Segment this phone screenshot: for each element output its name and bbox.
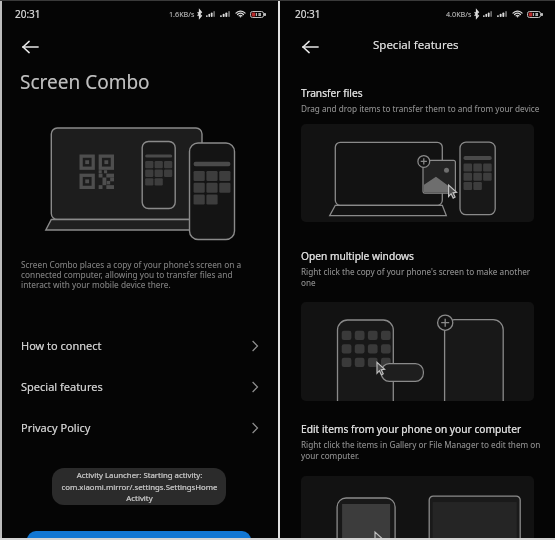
staticText: Special features bbox=[21, 379, 103, 394]
staticText: 4.0KB/s bbox=[446, 9, 472, 19]
staticText: Drag and drop items to transfer them to … bbox=[301, 103, 540, 114]
staticText: Right click the items in Gallery or File… bbox=[301, 439, 544, 462]
staticText: Right click the copy of your phone's scr… bbox=[301, 266, 544, 289]
button[interactable] bbox=[27, 531, 251, 540]
button[interactable]: Privacy Policy bbox=[0, 407, 278, 448]
staticText: Open multiple windows bbox=[301, 249, 414, 263]
button[interactable]: Special features bbox=[0, 366, 278, 407]
staticText: How to connect bbox=[21, 338, 102, 353]
staticText: Activity Launcher: Starting activity: co… bbox=[61, 470, 218, 503]
staticText: Edit items from your phone on your compu… bbox=[301, 422, 522, 436]
staticText: 20:31 bbox=[295, 7, 321, 21]
staticText: Transfer files bbox=[301, 86, 363, 100]
button[interactable]: How to connect bbox=[0, 325, 278, 366]
staticText: Screen Combo bbox=[20, 69, 150, 95]
button[interactable]: Back bbox=[295, 32, 325, 62]
staticText: Privacy Policy bbox=[21, 420, 91, 435]
staticText: Special features bbox=[373, 37, 459, 53]
staticText: 1.6KB/s bbox=[169, 9, 195, 19]
button[interactable]: Back bbox=[15, 32, 45, 62]
staticText: Screen Combo places a copy of your phone… bbox=[21, 259, 243, 291]
staticText: 20:31 bbox=[15, 7, 41, 21]
